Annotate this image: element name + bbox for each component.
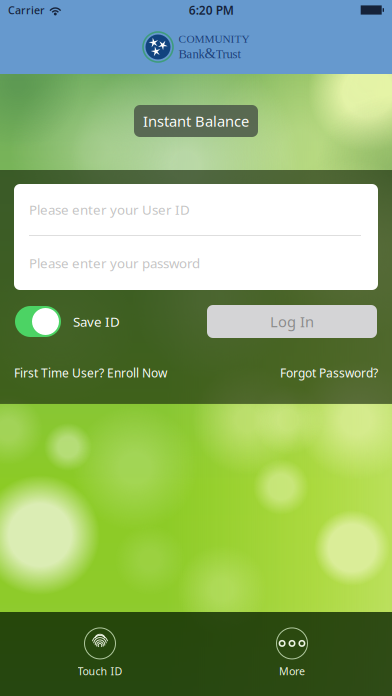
staticText: 6:20 PM (189, 2, 234, 18)
staticText: Log In (270, 312, 314, 331)
button[interactable]: Forgot Password? (280, 365, 378, 381)
button[interactable]: Log In (207, 305, 377, 338)
button[interactable]: Instant Balance (134, 105, 258, 137)
staticText: & (204, 45, 215, 61)
staticText: Touch ID (77, 664, 122, 678)
button[interactable]: More (232, 627, 352, 679)
button[interactable]: First Time User? Enroll Now (14, 365, 167, 381)
button[interactable]: Touch ID (40, 627, 160, 679)
staticText: More (279, 664, 305, 678)
button[interactable]: Save ID (15, 306, 120, 337)
staticText: Please enter your User ID (29, 201, 190, 218)
staticText: Instant Balance (143, 111, 249, 131)
staticText: Save ID (73, 313, 120, 330)
staticText: COMMUNITY (178, 33, 249, 45)
staticText: Carrier (8, 3, 45, 17)
staticText: Please enter your password (29, 254, 200, 272)
staticText: Forgot Password? (280, 365, 378, 381)
staticText: Bank (178, 47, 204, 61)
staticText: Trust (215, 47, 241, 61)
staticText: First Time User? Enroll Now (14, 365, 167, 381)
